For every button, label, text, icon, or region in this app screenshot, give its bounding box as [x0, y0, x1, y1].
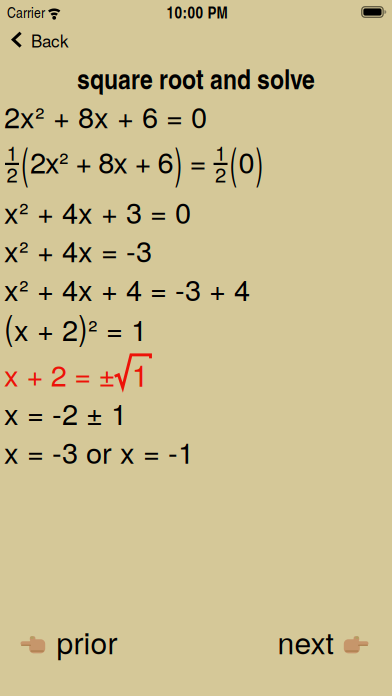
button[interactable]: next	[277, 622, 368, 661]
staticText: 0	[238, 142, 254, 180]
staticText: x² + 4x = -3	[4, 231, 152, 269]
staticText: x = -3 or x = -1	[4, 432, 194, 470]
staticText: 2	[6, 160, 17, 187]
staticText: next	[277, 622, 333, 661]
staticText: )	[173, 141, 183, 179]
staticText: square root and solve	[77, 58, 315, 98]
staticText: =	[183, 142, 212, 180]
staticText: 1	[6, 139, 17, 165]
staticText: x² + 4x + 4 = -3 + 4	[4, 269, 250, 307]
staticText: 2x² + 8x + 6	[30, 142, 173, 180]
staticText: (	[20, 141, 30, 179]
button[interactable]: prior	[20, 622, 117, 661]
staticText: x² + 4x + 3 = 0	[4, 192, 191, 230]
staticText: )	[78, 306, 88, 344]
staticText: x = -2 ± 1	[4, 393, 127, 431]
staticText: x + 2	[14, 309, 78, 347]
staticText: 2	[215, 160, 226, 187]
staticText: 2x² + 8x + 6 = 0	[4, 97, 207, 135]
staticText: x + 2 = ±	[4, 355, 116, 393]
staticText: Carrier	[7, 3, 45, 21]
staticText: (	[4, 306, 14, 344]
staticText: )	[254, 141, 264, 179]
staticText: (	[228, 141, 238, 179]
staticText: Back	[31, 29, 69, 51]
staticText: prior	[56, 622, 117, 661]
staticText: 1	[215, 139, 226, 165]
staticText: 10:00 PM	[166, 1, 227, 23]
staticText: 1	[132, 354, 149, 394]
staticText: ² = 1	[88, 309, 147, 347]
button[interactable]: Back	[11, 29, 69, 51]
